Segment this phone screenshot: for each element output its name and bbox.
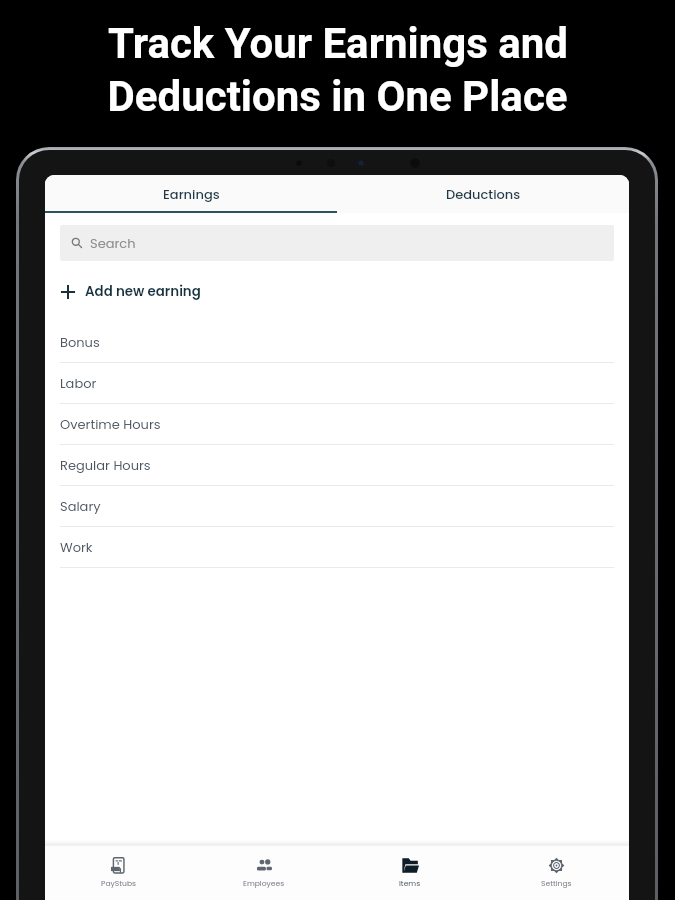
staticText: Track Your Earnings and	[108, 19, 568, 68]
button[interactable]: Bonus	[60, 322, 614, 363]
staticText: Deductions in One Place	[107, 72, 568, 121]
button[interactable]: Earnings	[45, 175, 337, 213]
button[interactable]: Search	[60, 225, 614, 261]
button[interactable]: Overtime Hours	[60, 404, 614, 445]
staticText: Regular Hours	[60, 456, 151, 474]
button[interactable]: Regular Hours	[60, 445, 614, 486]
button[interactable]: Work	[60, 527, 614, 568]
staticText: Labor	[60, 374, 97, 392]
staticText: Deductions	[446, 185, 521, 203]
staticText: Search	[90, 234, 136, 252]
staticText: PayStubs	[101, 878, 136, 889]
staticText: Items	[399, 878, 421, 889]
staticText: Bonus	[60, 333, 100, 351]
button[interactable]: Add new earning	[60, 261, 614, 322]
button[interactable]: Settings	[483, 846, 629, 900]
button[interactable]: Employees	[191, 846, 337, 900]
staticText: Earnings	[163, 185, 220, 203]
button[interactable]: PayStubs	[45, 846, 191, 900]
staticText: Add new earning	[85, 282, 201, 301]
staticText: Settings	[541, 878, 572, 889]
button[interactable]: Salary	[60, 486, 614, 527]
staticText: Overtime Hours	[60, 415, 161, 433]
staticText: Salary	[60, 497, 101, 515]
button[interactable]: Labor	[60, 363, 614, 404]
staticText: Work	[60, 538, 93, 556]
button[interactable]: Deductions	[337, 175, 629, 213]
staticText: Employees	[243, 878, 285, 889]
button[interactable]: Items	[337, 846, 483, 900]
